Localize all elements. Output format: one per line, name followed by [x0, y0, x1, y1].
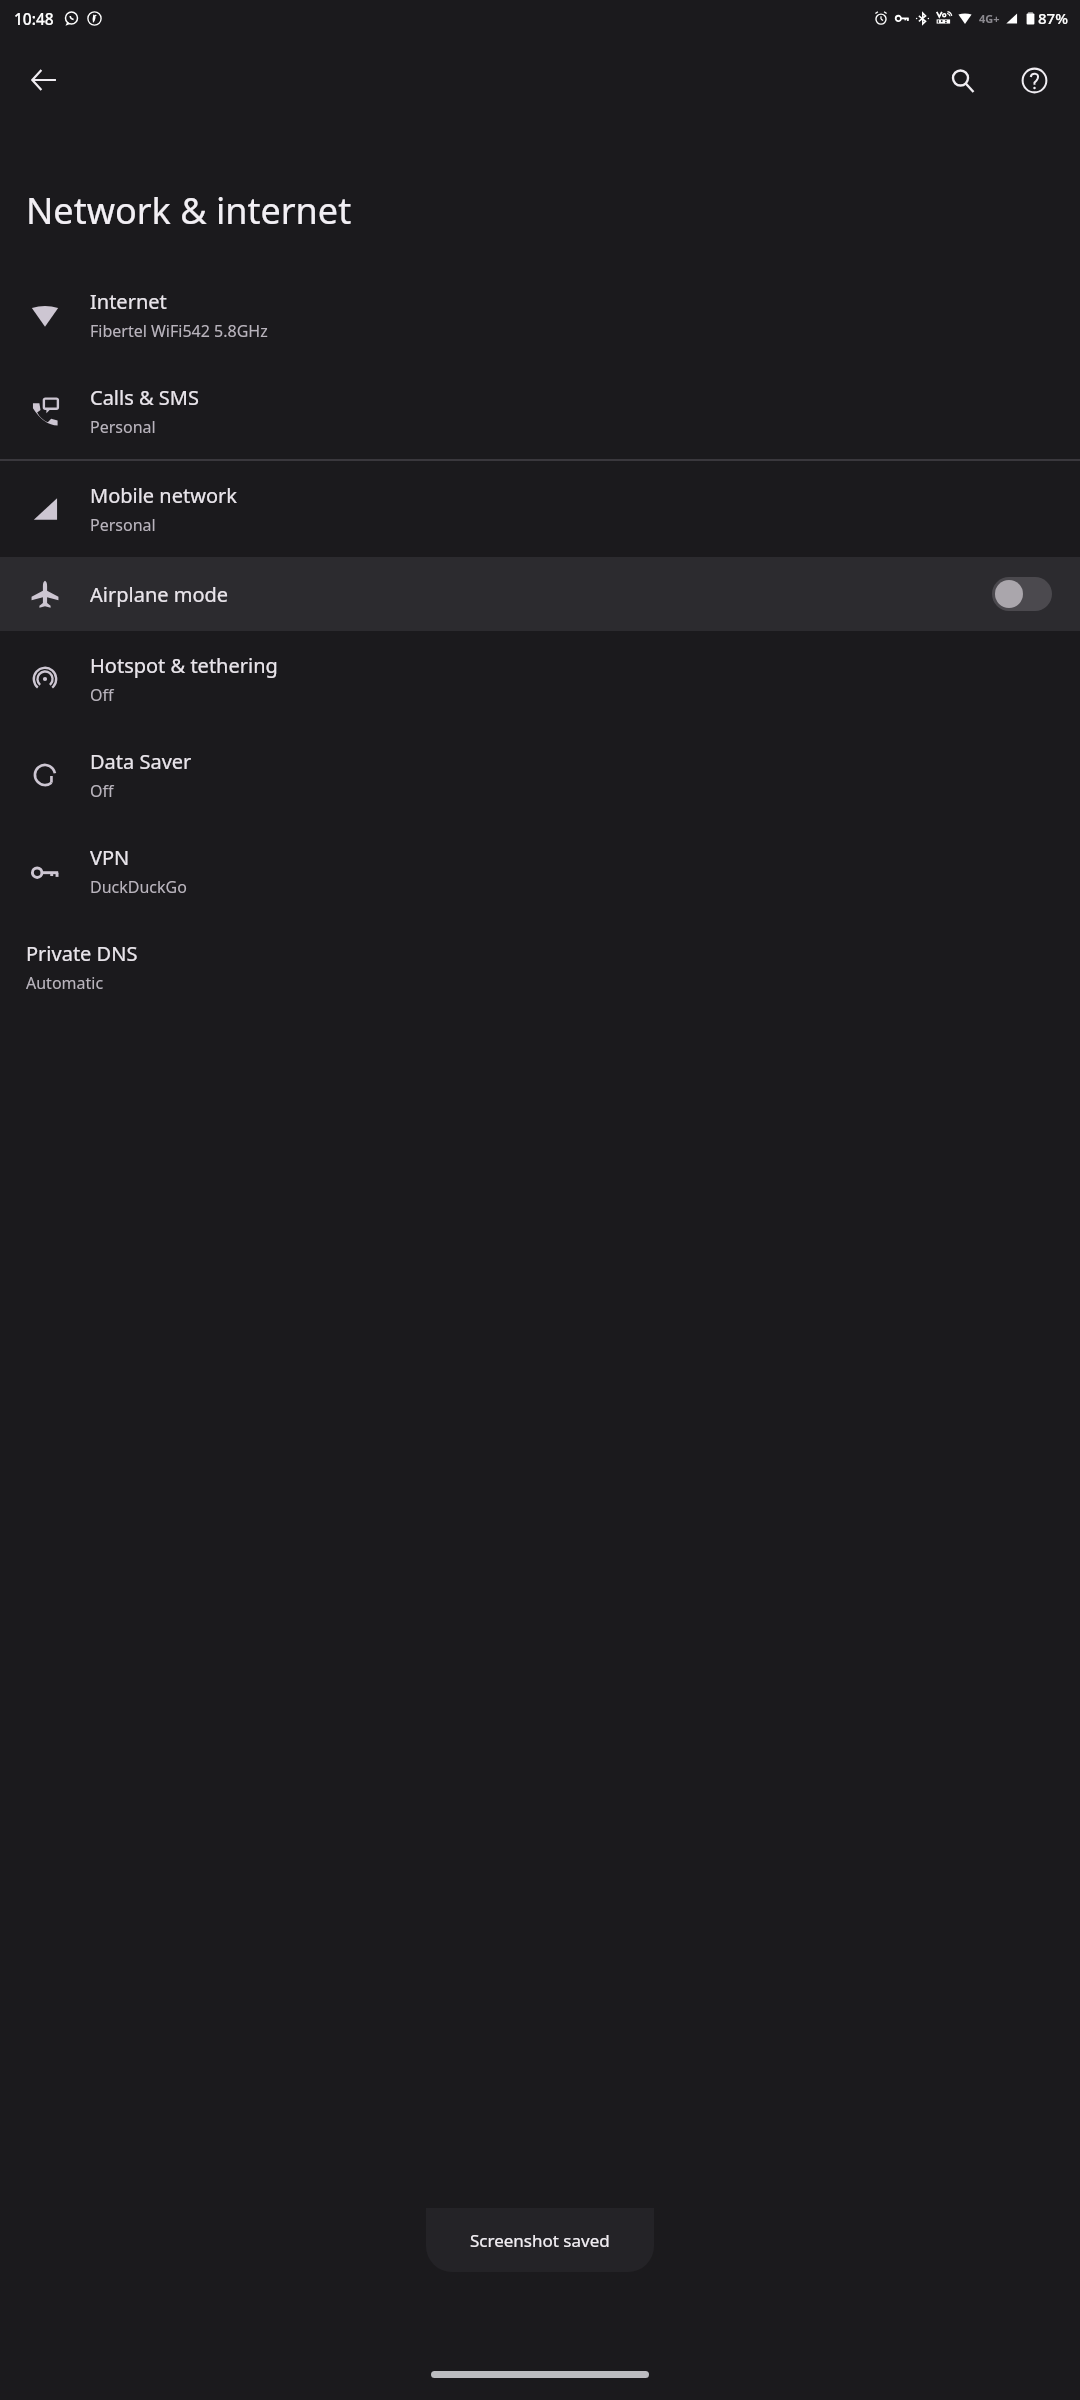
button[interactable]: Search [936, 54, 988, 106]
button[interactable]: Back [18, 54, 70, 106]
staticText: Internet [90, 288, 167, 315]
staticText: Airplane mode [90, 581, 229, 608]
staticText: Hotspot & tethering [90, 652, 278, 679]
button[interactable]: Internet [0, 267, 1080, 363]
staticText: Automatic [26, 972, 104, 994]
button[interactable]: Data Saver [0, 727, 1080, 823]
staticText: Off [90, 780, 114, 802]
button[interactable]: Airplane mode toggle [992, 577, 1052, 611]
button[interactable]: Private DNS [0, 919, 1080, 1015]
staticText: Fibertel WiFi542 5.8GHz [90, 320, 268, 342]
staticText: Personal [90, 514, 156, 536]
staticText: Data Saver [90, 748, 192, 775]
button[interactable]: Mobile network [0, 461, 1080, 557]
button[interactable]: VPN [0, 823, 1080, 919]
button[interactable]: Airplane mode [0, 557, 1080, 631]
staticText: Personal [90, 416, 156, 438]
button[interactable]: Hotspot & tethering [0, 631, 1080, 727]
staticText: 87% [1038, 8, 1068, 28]
staticText: DuckDuckGo [90, 876, 187, 898]
staticText: Calls & SMS [90, 384, 199, 411]
button[interactable]: Calls & SMS [0, 363, 1080, 459]
staticText: Screenshot saved [470, 2229, 610, 2252]
staticText: 4G+ [979, 11, 1000, 26]
staticText: Private DNS [26, 940, 138, 967]
staticText: Off [90, 684, 114, 706]
staticText: VPN [90, 844, 130, 871]
staticText: Network & internet [26, 186, 352, 235]
staticText: Mobile network [90, 482, 237, 509]
button[interactable]: Help [1008, 54, 1060, 106]
staticText: 10:48 [14, 8, 54, 29]
